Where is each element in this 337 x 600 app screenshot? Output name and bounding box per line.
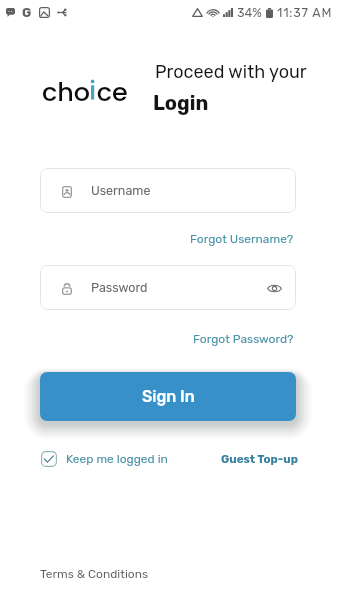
- staticText: cho ce: [42, 74, 128, 104]
- staticText: G: [22, 5, 32, 20]
- staticText: Proceed with your: [155, 61, 307, 82]
- staticText: Password: [91, 280, 148, 295]
- staticText: Login: [153, 91, 209, 115]
- staticText: Username: [91, 183, 151, 198]
- button[interactable]: Show password: [265, 279, 283, 297]
- staticText: Forgot Username?: [190, 232, 294, 246]
- staticText: Keep me logged in: [66, 452, 168, 466]
- staticText: Terms & Conditions: [40, 567, 149, 581]
- button[interactable]: Password: [40, 265, 296, 310]
- staticText: 34%: [237, 5, 262, 20]
- button[interactable]: Username: [40, 168, 296, 213]
- button[interactable]: Guest Top-up: [221, 452, 298, 466]
- button[interactable]: Forgot Password?: [191, 330, 296, 348]
- button[interactable]: Forgot Username?: [188, 230, 296, 248]
- button[interactable]: Sign In: [40, 372, 296, 421]
- staticText: Forgot Password?: [193, 332, 294, 346]
- button[interactable]: Keep me logged in: [41, 451, 168, 467]
- staticText: Guest Top-up: [221, 452, 298, 466]
- staticText: Sign In: [142, 387, 195, 406]
- staticText: 11:37 AM: [277, 5, 333, 20]
